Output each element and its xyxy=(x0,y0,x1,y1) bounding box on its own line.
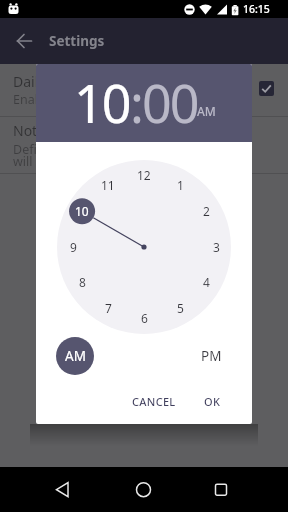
staticText: will be shown xyxy=(13,153,93,170)
staticText: Enable the daily reminder xyxy=(13,91,164,108)
staticText: PM xyxy=(201,347,222,365)
button[interactable]: AM xyxy=(56,337,94,375)
staticText: 1 xyxy=(177,177,184,191)
staticText: 5 xyxy=(177,300,184,314)
staticText: Settings xyxy=(49,32,105,50)
staticText: 16:15 xyxy=(243,2,270,16)
staticText: 6 xyxy=(141,310,148,324)
button[interactable] xyxy=(259,81,274,96)
button[interactable]: PM xyxy=(191,337,232,375)
staticText: OK xyxy=(204,394,221,409)
button[interactable] xyxy=(30,467,95,512)
button[interactable] xyxy=(111,467,176,512)
staticText: 3 xyxy=(213,239,220,253)
button[interactable]: Notification time xyxy=(13,121,123,140)
button[interactable]: CANCEL xyxy=(124,393,184,410)
staticText: 10 xyxy=(75,203,89,217)
staticText: : xyxy=(130,67,142,138)
staticText: 9 xyxy=(70,239,77,253)
staticText: 00 xyxy=(142,67,198,138)
staticText: 12 xyxy=(137,167,151,181)
staticText: 2 xyxy=(203,203,210,217)
staticText: 11 xyxy=(101,177,115,191)
staticText: 8 xyxy=(79,274,86,288)
staticText: Daily reminder xyxy=(13,72,111,91)
staticText: AM xyxy=(197,103,216,119)
staticText: CANCEL xyxy=(132,394,176,409)
staticText: 4 xyxy=(203,274,210,288)
button[interactable]: OK xyxy=(196,393,228,410)
staticText: AM xyxy=(65,347,86,365)
button[interactable] xyxy=(190,467,255,512)
staticText: 7 xyxy=(105,300,112,314)
staticText: Notification time xyxy=(13,121,123,140)
staticText: Define at what time the notification xyxy=(13,141,221,158)
button[interactable]: Daily reminder xyxy=(13,72,111,91)
staticText: 10 xyxy=(74,67,130,138)
